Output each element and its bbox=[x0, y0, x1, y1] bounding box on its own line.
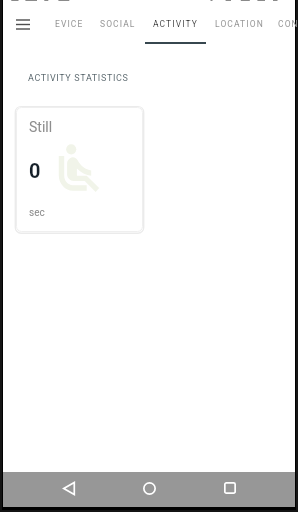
staticText: SOCIAL bbox=[100, 19, 136, 29]
button[interactable]: EVICE bbox=[46, 3, 92, 44]
button[interactable]: Open navigation menu bbox=[6, 7, 40, 41]
button[interactable]: Back bbox=[54, 473, 84, 503]
button[interactable]: Recent apps bbox=[215, 473, 245, 503]
staticText: ACTIVITY bbox=[153, 19, 198, 29]
button[interactable]: LOCATION bbox=[207, 3, 271, 44]
staticText: 0 bbox=[29, 159, 41, 182]
button[interactable]: Still bbox=[16, 107, 143, 232]
button[interactable]: Home bbox=[134, 473, 164, 503]
staticText: Still bbox=[29, 119, 53, 135]
staticText: ACTIVITY STATISTICS bbox=[28, 73, 129, 84]
button[interactable]: SOCIAL bbox=[91, 3, 145, 44]
staticText: LOCATION bbox=[215, 19, 264, 29]
staticText: CONTACTS bbox=[278, 19, 298, 29]
button[interactable]: ACTIVITY bbox=[145, 3, 206, 44]
staticText: sec bbox=[29, 207, 45, 219]
button[interactable]: CONTACTS bbox=[271, 3, 298, 44]
staticText: EVICE bbox=[55, 19, 84, 29]
